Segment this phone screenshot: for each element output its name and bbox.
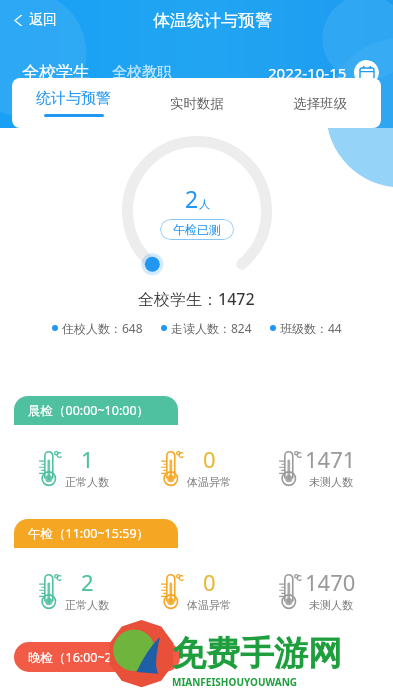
staticText: MIANFEISHOUYOUWANG bbox=[172, 675, 298, 689]
staticText: 实时数据 bbox=[170, 95, 224, 112]
button[interactable]: 选择班级 bbox=[258, 78, 381, 128]
staticText: 体温异常 bbox=[187, 475, 231, 489]
staticText: 统计与预警 bbox=[36, 89, 111, 108]
staticText: 全校教职 bbox=[112, 63, 172, 82]
button[interactable]: 2 bbox=[14, 548, 379, 630]
staticText: 未测人数 bbox=[309, 475, 353, 489]
button[interactable]: 统计与预警 bbox=[12, 78, 135, 128]
button[interactable]: 2022-10-15 bbox=[268, 60, 379, 85]
staticText: 午检已测 bbox=[173, 222, 221, 237]
staticText: 体温异常 bbox=[187, 598, 231, 612]
staticText: 0 bbox=[203, 567, 216, 597]
staticText: 1 bbox=[81, 444, 94, 474]
button[interactable]: 全校学生 bbox=[22, 62, 90, 83]
button[interactable]: 午检（11:00~15:59） bbox=[14, 519, 178, 548]
button[interactable]: 晨检（00:00~10:00） bbox=[14, 396, 178, 425]
staticText: 选择班级 bbox=[293, 95, 347, 112]
staticText: 全校学生 bbox=[22, 62, 90, 83]
staticText: 1471 bbox=[305, 444, 356, 474]
staticText: 2 bbox=[185, 183, 199, 214]
staticText: 全校学生：1472 bbox=[138, 288, 255, 310]
staticText: 0 bbox=[203, 444, 216, 474]
staticText: 晨检（00:00~10:00） bbox=[28, 402, 150, 419]
staticText: 晚检（16:00~23:59） bbox=[28, 649, 150, 666]
staticText: 午检（11:00~15:59） bbox=[28, 525, 150, 542]
staticText: 2 bbox=[81, 567, 94, 597]
staticText: 1470 bbox=[305, 567, 356, 597]
button[interactable]: 全校教职 bbox=[112, 63, 172, 82]
staticText: 住校人数：648 bbox=[62, 320, 143, 336]
staticText: 班级数：44 bbox=[280, 320, 342, 336]
staticText: 体温统计与预警 bbox=[153, 10, 272, 31]
button[interactable]: 午检已测 bbox=[160, 219, 234, 240]
button[interactable]: 1 bbox=[14, 425, 379, 507]
staticText: 正常人数 bbox=[65, 475, 109, 489]
staticText: 2022-10-15 bbox=[268, 63, 347, 83]
button[interactable]: 晚检（16:00~23:59） bbox=[14, 642, 180, 672]
other: Pick date bbox=[354, 60, 379, 85]
button[interactable]: 实时数据 bbox=[135, 78, 258, 128]
staticText: 返回 bbox=[29, 11, 57, 29]
staticText: 未测人数 bbox=[309, 598, 353, 612]
button[interactable]: 返回 bbox=[8, 7, 63, 33]
staticText: 免费手游网 bbox=[172, 632, 342, 675]
staticText: 走读人数：824 bbox=[171, 320, 252, 336]
staticText: 正常人数 bbox=[65, 598, 109, 612]
staticText: 人 bbox=[199, 197, 210, 211]
